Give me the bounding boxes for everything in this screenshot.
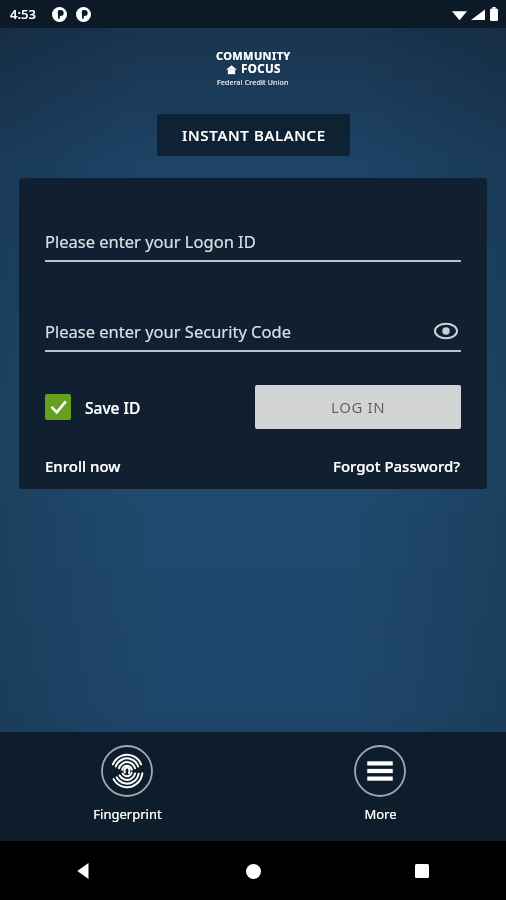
staticText: Please enter your Logon ID bbox=[45, 230, 256, 252]
staticText: LOG IN bbox=[331, 397, 386, 417]
button[interactable]: Recent apps bbox=[407, 856, 437, 886]
button[interactable]: Home bbox=[238, 856, 268, 886]
button[interactable]: Enroll now bbox=[45, 456, 121, 476]
button[interactable]: Please enter your Logon ID bbox=[45, 222, 461, 260]
staticText: Fingerprint bbox=[93, 805, 162, 823]
staticText: Save ID bbox=[85, 397, 141, 418]
staticText: Federal Credit Union bbox=[217, 78, 289, 88]
button[interactable]: LOG IN bbox=[255, 385, 461, 429]
staticText: FOCUS bbox=[241, 61, 281, 77]
button[interactable]: More bbox=[325, 732, 435, 823]
button[interactable]: Fingerprint bbox=[72, 732, 182, 823]
button[interactable]: Back bbox=[69, 856, 99, 886]
button[interactable]: Save ID bbox=[45, 394, 141, 420]
staticText: INSTANT BALANCE bbox=[182, 125, 326, 145]
button[interactable]: INSTANT BALANCE bbox=[157, 114, 350, 156]
button[interactable]: Forgot Password? bbox=[333, 456, 461, 476]
button[interactable]: Show password bbox=[431, 316, 461, 346]
button[interactable]: Please enter your Security Code bbox=[45, 320, 291, 342]
staticText: 4:53 bbox=[10, 5, 36, 23]
staticText: More bbox=[364, 805, 397, 823]
staticText: Enroll now bbox=[45, 456, 121, 476]
staticText: Forgot Password? bbox=[333, 456, 461, 476]
staticText: COMMUNITY bbox=[216, 48, 291, 61]
